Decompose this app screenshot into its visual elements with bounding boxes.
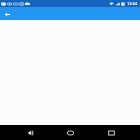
button[interactable]: Recent apps: [100, 125, 122, 140]
button[interactable]: Navigate up: [2, 9, 12, 19]
button[interactable]: Home: [59, 125, 81, 140]
staticText: 12:54: [127, 1, 138, 6]
button[interactable]: Back: [19, 125, 41, 140]
